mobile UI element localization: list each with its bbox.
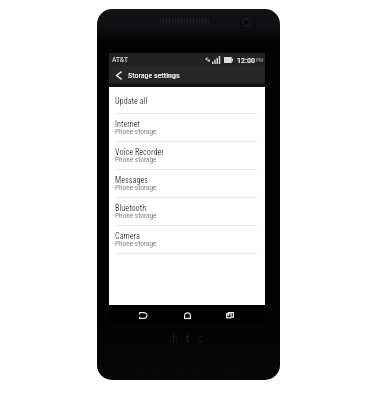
staticText: Phone storage: [115, 211, 157, 220]
staticText: Voice Recorder: [115, 147, 164, 157]
staticText: Update all: [115, 96, 148, 106]
button[interactable]: Messages: [109, 170, 265, 198]
staticText: Phone storage: [115, 127, 157, 136]
staticText: Internet: [115, 119, 140, 129]
button[interactable]: Internet: [109, 114, 265, 142]
staticText: Phone storage: [115, 155, 157, 164]
button[interactable]: Update all: [109, 87, 265, 114]
staticText: Phone storage: [115, 239, 157, 248]
staticText: Messages: [115, 175, 149, 185]
staticText: AT&T: [112, 55, 128, 64]
button[interactable]: Back: [136, 307, 151, 324]
staticText: Storage settings: [128, 71, 180, 80]
button[interactable]: Camera: [109, 226, 265, 254]
button[interactable]: Recent apps: [222, 307, 237, 324]
staticText: Phone storage: [115, 183, 157, 192]
button[interactable]: Bluetooth: [109, 198, 265, 226]
staticText: 12:00: [237, 55, 255, 64]
button[interactable]: Home: [180, 307, 195, 324]
staticText: PM: [256, 57, 264, 64]
button[interactable]: Voice Recorder: [109, 142, 265, 170]
staticText: Bluetooth: [115, 203, 147, 213]
staticText: Camera: [115, 231, 140, 241]
button[interactable]: Back: [109, 66, 128, 85]
staticText: htc: [172, 331, 211, 346]
